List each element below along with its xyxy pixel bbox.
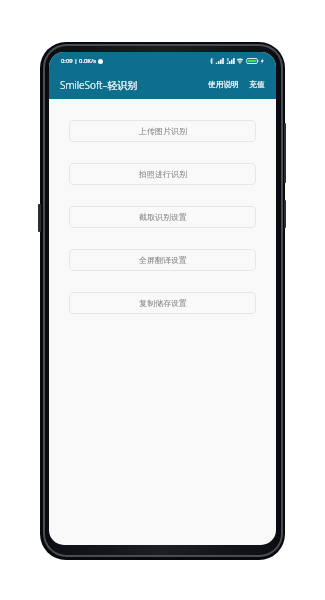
staticText: 复制储存设置	[139, 298, 187, 308]
button[interactable]: 上传图片识别	[69, 120, 256, 142]
button[interactable]: 截取识别设置	[69, 206, 256, 228]
staticText: SmileSoft–轻识别	[60, 78, 138, 92]
staticText: 全屏翻译设置	[139, 255, 187, 265]
staticText: 充值	[249, 80, 265, 90]
staticText: 上传图片识别	[139, 126, 187, 136]
button[interactable]: 全屏翻译设置	[69, 249, 256, 271]
staticText: 使用说明	[208, 80, 239, 90]
staticText: 截取识别设置	[139, 212, 187, 222]
button[interactable]: 充值	[247, 76, 267, 94]
button[interactable]: 使用说明	[206, 76, 241, 94]
other: Bluetooth, signal, Wi‑Fi and battery sta…	[210, 58, 265, 64]
staticText: 0:09 | 0.0K/s	[61, 57, 97, 65]
staticText: 拍照进行识别	[139, 169, 187, 179]
button[interactable]: 拍照进行识别	[69, 163, 256, 185]
button[interactable]: 复制储存设置	[69, 292, 256, 314]
